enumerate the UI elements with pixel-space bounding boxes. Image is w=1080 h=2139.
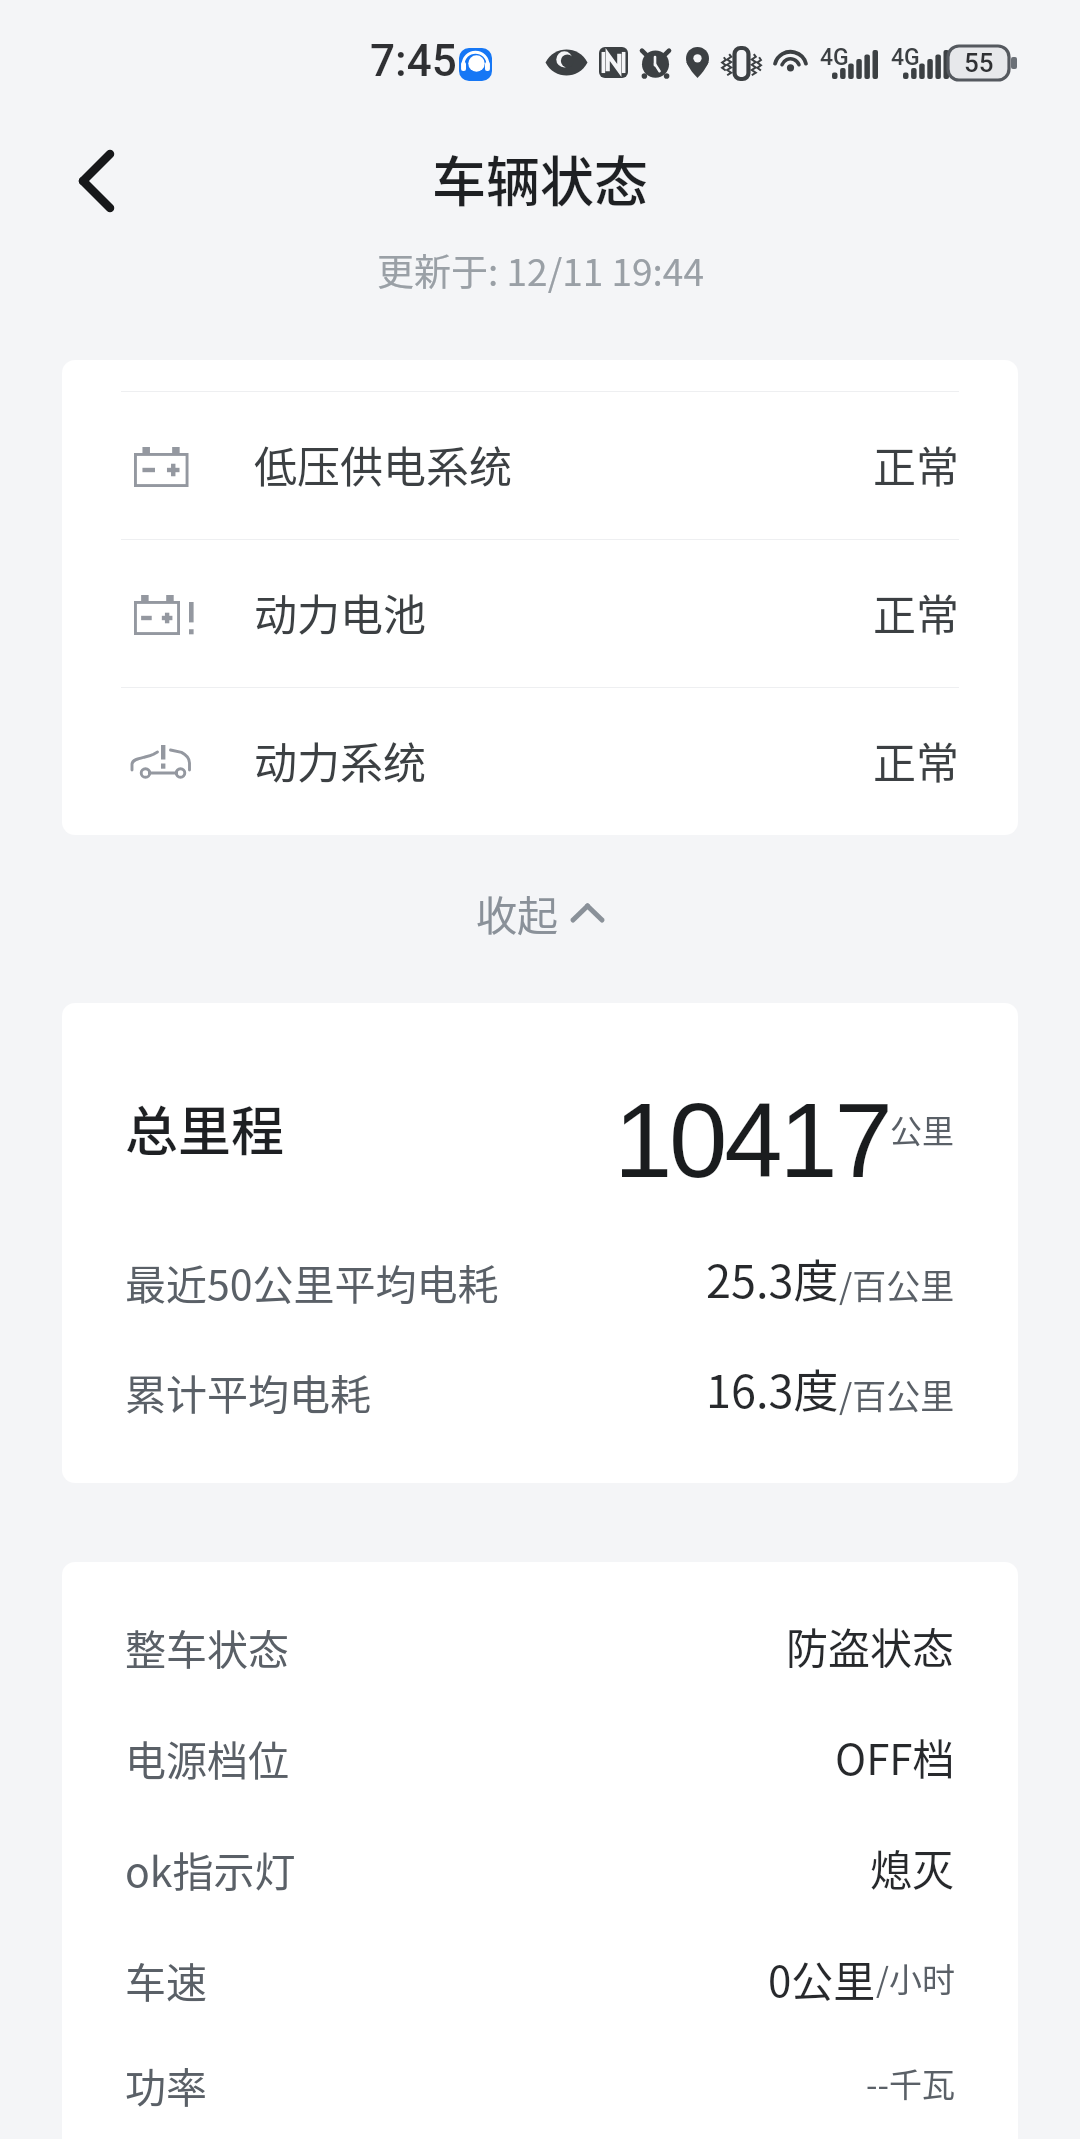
staticText: 10417 xyxy=(614,1082,890,1199)
staticText: 累计平均电耗 xyxy=(125,1362,371,1421)
button[interactable]: 收起 xyxy=(452,869,628,956)
staticText: OFF档 xyxy=(835,1726,955,1787)
button[interactable]: Back xyxy=(60,145,131,216)
button[interactable]: ok指示灯 xyxy=(125,1812,955,1923)
staticText: 正常 xyxy=(873,729,959,791)
staticText: 最近50公里平均电耗 xyxy=(125,1252,499,1311)
staticText: /百公里 xyxy=(839,1370,955,1419)
staticText: 正常 xyxy=(873,581,959,643)
staticText: 4G xyxy=(820,44,849,71)
staticText: 正常 xyxy=(873,433,959,495)
staticText: 4G xyxy=(891,44,920,71)
staticText: 更新于: 12/11 19:44 xyxy=(377,243,704,297)
staticText: 熄灭 xyxy=(870,1837,955,1898)
staticText: /小时 xyxy=(876,1954,955,2002)
staticText: 整车状态 xyxy=(125,1617,289,1676)
button[interactable]: 动力系统 xyxy=(62,688,1018,835)
button[interactable]: 电源档位 xyxy=(125,1701,955,1812)
staticText: --千瓦 xyxy=(866,2059,955,2107)
staticText: 收起 xyxy=(476,883,558,942)
staticText: 25.3度 xyxy=(706,1246,839,1311)
button[interactable]: 低压供电系统 xyxy=(62,392,1018,539)
staticText: 总里程 xyxy=(125,1090,284,1167)
staticText: 16.3度 xyxy=(706,1356,839,1421)
button[interactable]: 动力电池 xyxy=(62,540,1018,687)
staticText: 低压供电系统 xyxy=(254,433,512,495)
staticText: 功率 xyxy=(125,2055,207,2114)
button[interactable]: 整车状态 xyxy=(125,1590,955,1701)
staticText: 防盗状态 xyxy=(786,1615,955,1676)
staticText: 车速 xyxy=(125,1950,207,2009)
staticText: 0公里 xyxy=(768,1948,876,2009)
staticText: 动力电池 xyxy=(254,581,426,643)
staticText: 动力系统 xyxy=(254,729,426,791)
staticText: 车辆状态 xyxy=(432,139,648,217)
staticText: 55 xyxy=(964,48,994,78)
staticText: /百公里 xyxy=(839,1260,955,1309)
staticText: 电源档位 xyxy=(125,1728,289,1787)
button[interactable]: 车速 xyxy=(125,1923,955,2034)
staticText: 7:45 xyxy=(370,35,457,87)
staticText: 公里 xyxy=(890,1106,955,1152)
staticText: ok指示灯 xyxy=(125,1839,296,1898)
button[interactable]: 功率 xyxy=(125,2034,955,2139)
